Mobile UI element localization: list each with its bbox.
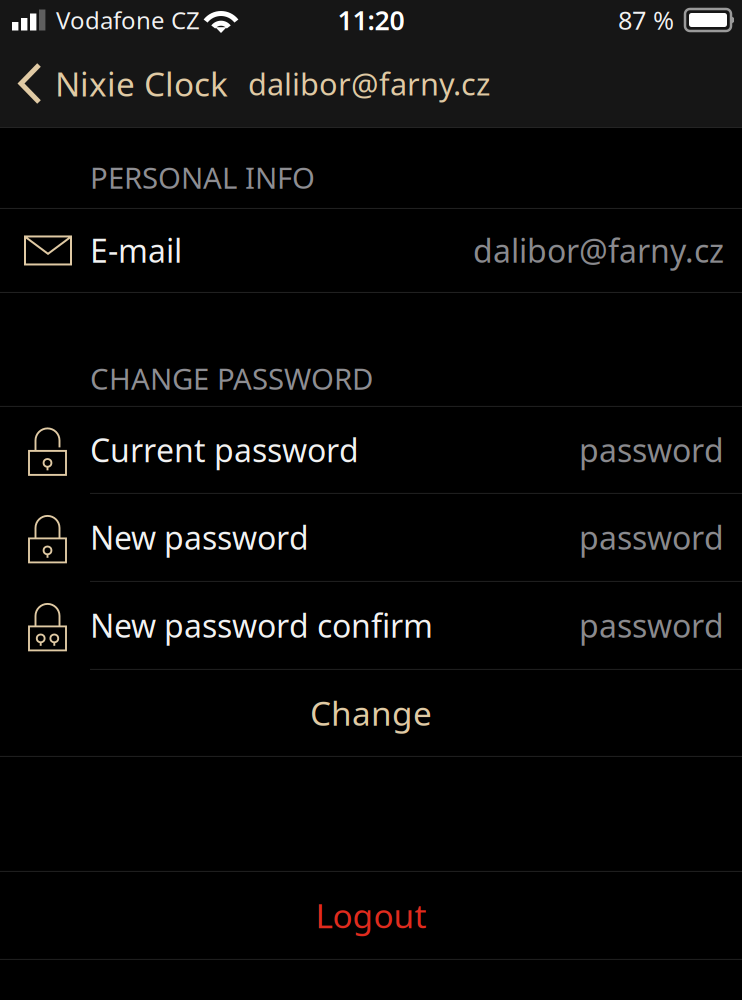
button[interactable]: New password xyxy=(0,494,742,581)
staticText: CHANGE PASSWORD xyxy=(90,359,373,398)
staticText: dalibor@farny.cz xyxy=(248,63,490,104)
staticText: password xyxy=(579,516,724,559)
button[interactable]: Current password xyxy=(0,407,742,493)
staticText: Logout xyxy=(315,893,426,938)
button[interactable]: E-mail xyxy=(0,209,742,292)
staticText: 87 % xyxy=(618,3,674,37)
staticText: Nixie Clock xyxy=(55,61,228,106)
staticText: New password xyxy=(90,516,309,559)
staticText: password xyxy=(579,604,724,647)
staticText: New password confirm xyxy=(90,604,433,647)
staticText: password xyxy=(579,429,724,471)
staticText: Current password xyxy=(90,429,359,471)
staticText: PERSONAL INFO xyxy=(90,158,315,197)
staticText: Vodafone CZ xyxy=(56,4,200,36)
button[interactable]: Logout xyxy=(0,872,742,959)
staticText: 11:20 xyxy=(337,2,404,38)
staticText: E-mail xyxy=(90,229,182,272)
button[interactable]: New password confirm xyxy=(0,582,742,669)
button[interactable]: Change xyxy=(0,670,742,756)
staticText: dalibor@farny.cz xyxy=(473,229,724,272)
button[interactable]: Nixie Clock xyxy=(0,46,238,120)
staticText: Change xyxy=(310,691,432,735)
